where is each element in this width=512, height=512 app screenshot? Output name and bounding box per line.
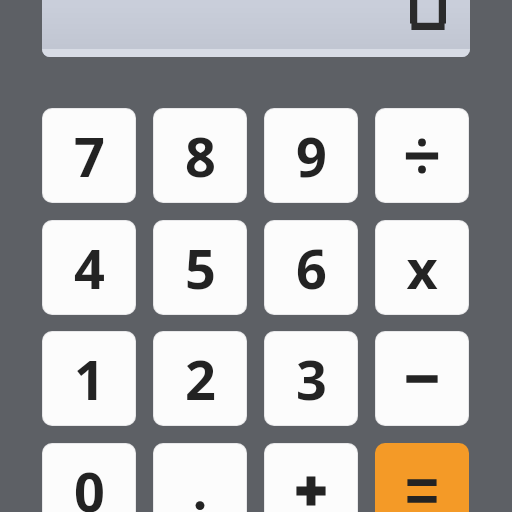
button[interactable]: Plus — [264, 443, 358, 512]
button[interactable]: Decimal point — [153, 443, 247, 512]
button[interactable]: 7 — [42, 108, 136, 203]
button[interactable]: 3 — [264, 331, 358, 426]
staticText: 9 — [296, 119, 327, 193]
button[interactable]: 4 — [42, 220, 136, 315]
button[interactable]: 1 — [42, 331, 136, 426]
staticText: 5 — [185, 231, 216, 305]
button[interactable]: Minus — [375, 331, 469, 426]
button[interactable]: Multiply — [375, 220, 469, 315]
staticText: x — [406, 231, 438, 305]
staticText: 1 — [74, 342, 105, 416]
staticText: 6 — [296, 231, 327, 305]
button[interactable] — [42, 0, 470, 57]
button[interactable]: Equals — [375, 443, 469, 512]
staticText: 8 — [185, 119, 216, 193]
button[interactable]: 2 — [153, 331, 247, 426]
button[interactable]: 8 — [153, 108, 247, 203]
staticText: 3 — [296, 342, 327, 416]
button[interactable]: 9 — [264, 108, 358, 203]
staticText: 2 — [185, 342, 216, 416]
staticText: 7 — [74, 119, 105, 193]
button[interactable]: Divide — [375, 108, 469, 203]
button[interactable]: 5 — [153, 220, 247, 315]
staticText: 4 — [74, 231, 105, 305]
button[interactable]: 0 — [42, 443, 136, 512]
button[interactable]: 6 — [264, 220, 358, 315]
staticText: 0 — [74, 454, 105, 512]
